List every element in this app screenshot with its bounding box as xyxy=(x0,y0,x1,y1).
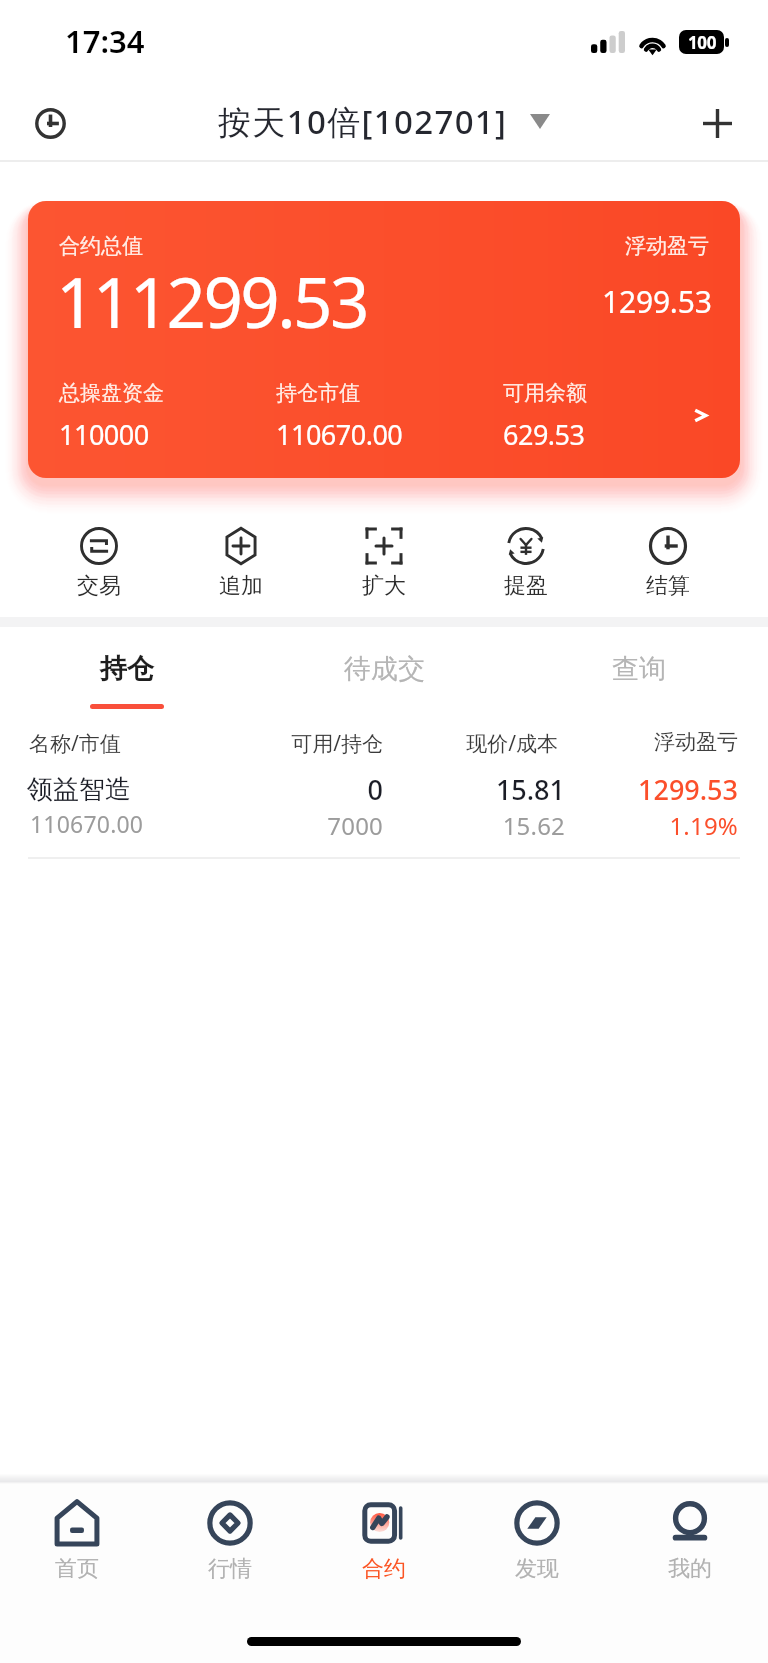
staticText: 追加 xyxy=(219,572,263,600)
staticText: 0 xyxy=(183,771,383,808)
staticText: 待成交 xyxy=(344,652,425,686)
button[interactable]: 合约总值 xyxy=(28,201,740,478)
button[interactable]: 结算 xyxy=(604,508,732,604)
staticText: 提盈 xyxy=(504,572,548,600)
button[interactable]: 首页 xyxy=(7,1474,147,1588)
button[interactable]: 我的 xyxy=(620,1474,760,1588)
staticText: 1299.53 xyxy=(602,281,712,322)
staticText: 查询 xyxy=(612,652,666,686)
button[interactable]: 交易 xyxy=(35,508,163,604)
staticText: 合约 xyxy=(362,1555,406,1583)
staticText: 15.62 xyxy=(365,809,565,842)
button[interactable]: 行情 xyxy=(160,1474,300,1588)
staticText: 按天10倍[102701] xyxy=(218,99,508,144)
staticText: 首页 xyxy=(55,1555,99,1583)
staticText: 110000 xyxy=(59,416,149,453)
staticText: 现价/成本 xyxy=(358,729,558,758)
staticText: 行情 xyxy=(208,1555,252,1583)
button[interactable]: 待成交 xyxy=(264,627,504,719)
staticText: 持仓 xyxy=(100,652,154,686)
staticText: 可用余额 xyxy=(503,380,587,406)
button[interactable]: Details xyxy=(678,393,722,437)
button[interactable]: 提盈 xyxy=(462,508,590,604)
staticText: 合约总值 xyxy=(59,233,143,259)
button[interactable]: 发现 xyxy=(467,1474,607,1588)
staticText: 17:34 xyxy=(65,20,145,62)
staticText: 交易 xyxy=(77,572,121,600)
staticText: 浮动盈亏 xyxy=(625,233,709,259)
button[interactable]: 合约 xyxy=(314,1474,454,1588)
staticText: 发现 xyxy=(515,1555,559,1583)
button[interactable]: Add xyxy=(689,95,745,151)
button[interactable]: 按天10倍[102701] xyxy=(218,95,550,147)
staticText: 名称/市值 xyxy=(29,729,121,758)
staticText: 结算 xyxy=(646,572,690,600)
staticText: 111299.53 xyxy=(56,254,367,348)
staticText: 100 xyxy=(688,31,716,54)
staticText: 7000 xyxy=(183,809,383,842)
staticText: 可用/持仓 xyxy=(183,729,383,758)
button[interactable]: 扩大 xyxy=(320,508,448,604)
staticText: 我的 xyxy=(668,1555,712,1583)
staticText: 总操盘资金 xyxy=(59,380,164,406)
button[interactable]: 查询 xyxy=(519,627,759,719)
staticText: 110670.00 xyxy=(30,808,144,839)
button[interactable]: 领益智造 xyxy=(0,766,768,850)
staticText: 浮动盈亏 xyxy=(538,729,738,755)
button[interactable]: History xyxy=(22,95,78,151)
staticText: 110670.00 xyxy=(276,416,403,453)
button[interactable]: 持仓 xyxy=(7,627,247,719)
staticText: 扩大 xyxy=(362,572,406,600)
button[interactable]: 追加 xyxy=(177,508,305,604)
staticText: 1.19% xyxy=(538,809,738,842)
staticText: 1299.53 xyxy=(538,771,738,808)
staticText: 持仓市值 xyxy=(276,380,360,406)
staticText: 领益智造 xyxy=(27,773,131,806)
staticText: 629.53 xyxy=(503,416,585,453)
staticText: 15.81 xyxy=(365,771,565,808)
